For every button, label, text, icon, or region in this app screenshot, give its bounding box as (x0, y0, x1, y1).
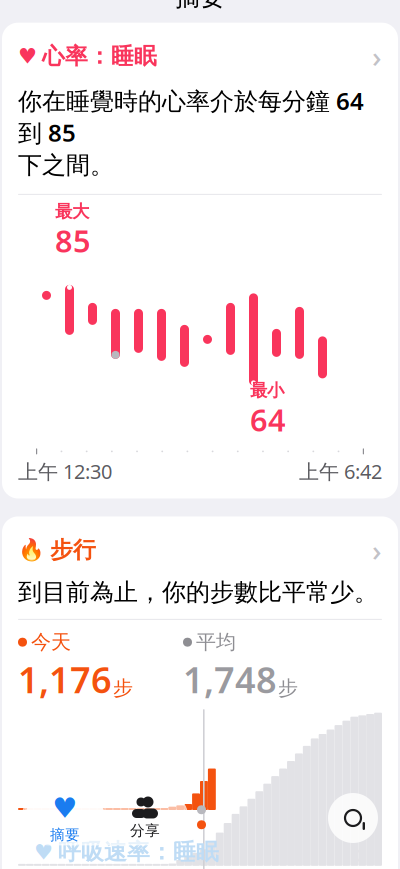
staticText: 85 (55, 220, 91, 261)
button[interactable]: 🔥 (18, 530, 382, 569)
staticText: 1,176 (18, 655, 112, 703)
staticText: 最大 (55, 201, 89, 222)
staticText: › (372, 37, 382, 76)
staticText: › (356, 832, 366, 869)
staticText: 呼吸速率：睡眠 (58, 838, 219, 866)
staticText: 1,748 (183, 655, 277, 703)
staticText: 步 (278, 676, 298, 700)
staticText: 摘要 (50, 826, 80, 844)
staticText: 步行 (50, 536, 96, 564)
staticText: 64 (250, 399, 286, 440)
staticText: 下之間。 (18, 150, 114, 180)
staticText: › (372, 530, 382, 569)
staticText: 步 (113, 676, 133, 700)
button[interactable]: ♥ (25, 794, 105, 842)
staticText: 摘要 (175, 0, 225, 12)
staticText: 分享 (130, 821, 160, 839)
staticText: 上午 12:30 (18, 458, 112, 484)
staticText: ♥ (34, 840, 53, 864)
staticText: ♥ (52, 792, 77, 824)
staticText: 🔥 (18, 538, 45, 562)
staticText: 你在睡覺時的心率介於每分鐘 64 到 85 (18, 85, 364, 148)
staticText: 最小 (250, 380, 284, 401)
button[interactable]: ♥ (18, 37, 382, 76)
staticText: 心率：睡眠 (42, 42, 157, 70)
button[interactable]: 分享 (105, 794, 185, 842)
button[interactable]: 搜尋 (328, 793, 378, 843)
staticText: ♥ (18, 44, 37, 68)
staticText: 今天 (31, 630, 71, 654)
staticText: 到目前為止，你的步數比平常少。 (18, 577, 378, 607)
staticText: 平均 (196, 630, 236, 654)
staticText: 上午 6:42 (299, 458, 382, 484)
